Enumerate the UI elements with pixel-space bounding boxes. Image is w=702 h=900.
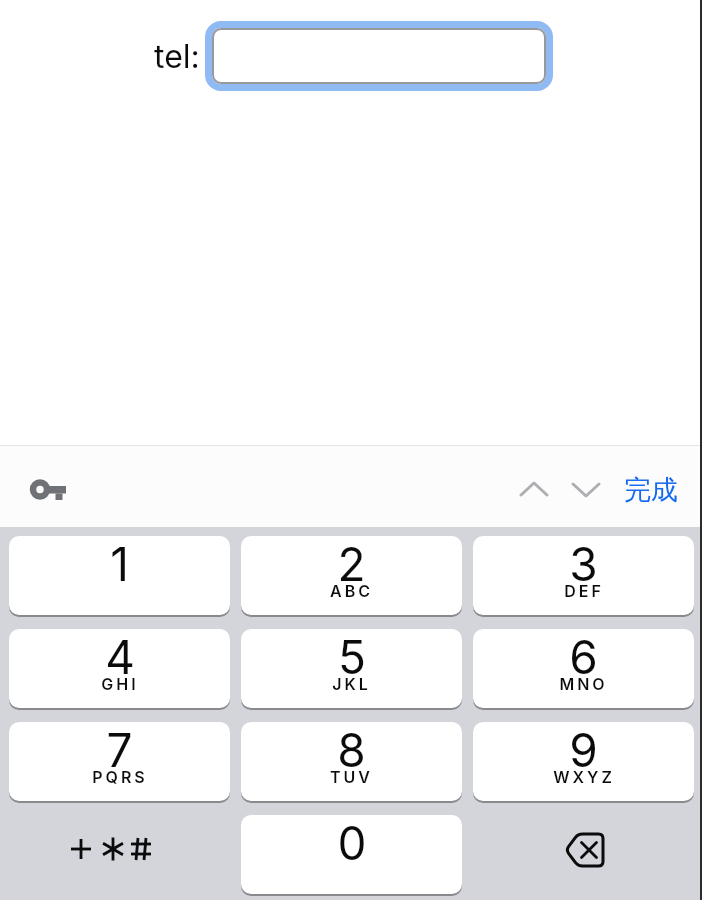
staticText: GHI <box>101 674 139 693</box>
button[interactable]: 7 <box>9 722 230 801</box>
button[interactable] <box>514 474 554 506</box>
button[interactable]: 完成 <box>612 468 690 512</box>
button[interactable] <box>473 815 694 894</box>
button[interactable]: 9 <box>473 722 694 801</box>
staticText: 5 <box>338 629 366 683</box>
staticText: PQRS <box>92 767 148 786</box>
staticText: DEF <box>564 581 604 600</box>
button[interactable]: 8 <box>241 722 462 801</box>
staticText: 8 <box>337 722 366 776</box>
staticText: JKL <box>332 674 371 693</box>
staticText: 1 <box>110 536 129 590</box>
button[interactable]: 0 <box>241 815 462 894</box>
button[interactable]: 5 <box>241 629 462 708</box>
button[interactable]: 1 <box>9 536 230 615</box>
button[interactable] <box>24 474 72 506</box>
staticText: TUV <box>330 767 373 786</box>
button[interactable]: 2 <box>241 536 462 615</box>
button[interactable] <box>9 815 230 894</box>
staticText: 3 <box>569 536 598 590</box>
staticText: ABC <box>330 581 373 600</box>
staticText: tel: <box>154 37 200 76</box>
staticText: MNO <box>559 674 608 693</box>
staticText: 6 <box>569 629 598 683</box>
button[interactable]: 3 <box>473 536 694 615</box>
staticText: WXYZ <box>553 767 615 786</box>
button[interactable]: 4 <box>9 629 230 708</box>
staticText: 9 <box>569 722 598 776</box>
staticText: 完成 <box>624 473 678 507</box>
staticText: 7 <box>106 722 133 776</box>
button[interactable] <box>566 474 606 506</box>
button[interactable] <box>212 28 546 84</box>
staticText: 2 <box>337 536 366 590</box>
button[interactable]: 6 <box>473 629 694 708</box>
staticText: 0 <box>337 815 367 869</box>
staticText: 4 <box>105 629 135 683</box>
